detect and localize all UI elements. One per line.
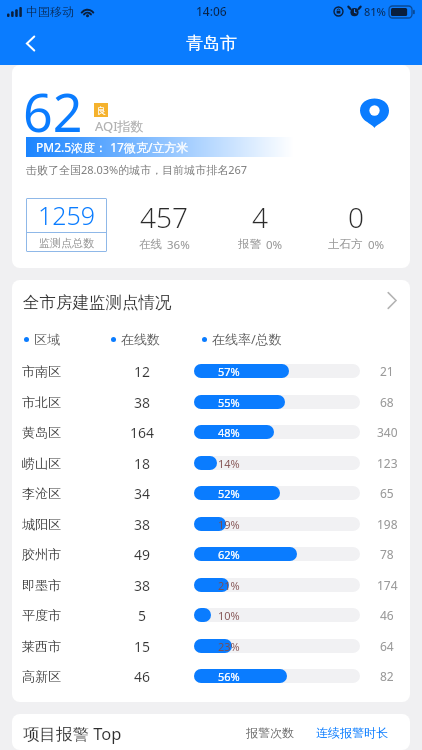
staticText: 21: [380, 363, 394, 379]
staticText: 164: [104, 423, 180, 442]
staticText: 4: [252, 198, 268, 231]
staticText: 82: [380, 668, 394, 684]
button[interactable]: 黄岛区: [12, 417, 410, 447]
button[interactable]: Back: [16, 29, 44, 57]
staticText: 项目报警 Top: [23, 722, 236, 745]
staticText: 市南区: [22, 363, 104, 379]
staticText: 0%: [368, 237, 385, 252]
button[interactable]: 连续报警时长: [304, 725, 410, 740]
staticText: 土石方: [328, 237, 363, 251]
staticText: 123: [377, 455, 398, 471]
staticText: 报警: [238, 237, 261, 251]
staticText: 李沧区: [22, 485, 104, 501]
staticText: 49: [104, 545, 180, 564]
staticText: 12: [104, 362, 180, 381]
staticText: 0: [348, 198, 364, 231]
staticText: 18: [104, 454, 180, 473]
staticText: 城阳区: [22, 516, 104, 532]
button[interactable]: 崂山区: [12, 448, 410, 478]
staticText: 击败了全国28.03%的城市，目前城市排名267: [26, 162, 248, 177]
staticText: 黄岛区: [22, 424, 104, 440]
staticText: 崂山区: [22, 455, 104, 471]
button[interactable]: 全市房建监测点情况: [12, 280, 410, 321]
staticText: 340: [377, 424, 398, 440]
staticText: 监测点总数: [39, 236, 94, 250]
staticText: 38: [104, 515, 180, 534]
staticText: 198: [377, 516, 398, 532]
button[interactable]: 城阳区: [12, 509, 410, 539]
staticText: PM2.5浓度： 17微克/立方米: [36, 139, 189, 155]
staticText: 10%: [218, 608, 240, 622]
staticText: 区域: [34, 331, 60, 347]
other: More: [387, 292, 397, 309]
button[interactable]: 市南区: [12, 356, 410, 386]
button[interactable]: 高新区: [12, 661, 410, 691]
staticText: 62: [23, 76, 83, 147]
staticText: 174: [377, 577, 398, 593]
staticText: 高新区: [22, 668, 104, 684]
staticText: 14:06: [196, 3, 227, 19]
staticText: 65: [380, 485, 394, 501]
staticText: 34: [104, 484, 180, 503]
staticText: 52%: [218, 486, 240, 500]
staticText: AQI指数: [95, 117, 144, 135]
staticText: 48%: [218, 425, 240, 439]
staticText: 即墨市: [22, 577, 104, 593]
staticText: 23%: [218, 639, 240, 653]
staticText: 46: [104, 667, 180, 686]
staticText: 64: [380, 638, 394, 654]
staticText: 在线: [139, 237, 162, 251]
button[interactable]: 平度市: [12, 600, 410, 630]
staticText: 连续报警时长: [316, 725, 388, 740]
button[interactable]: 市北区: [12, 387, 410, 417]
staticText: 中国移动: [26, 4, 74, 19]
staticText: 56%: [218, 669, 240, 683]
button[interactable]: 莱西市: [12, 631, 410, 661]
button[interactable]: Location: [360, 96, 389, 128]
staticText: 36%: [167, 237, 190, 252]
staticText: 55%: [218, 395, 240, 409]
button[interactable]: 胶州市: [12, 539, 410, 569]
staticText: 46: [380, 607, 394, 623]
staticText: 81%: [364, 4, 386, 19]
staticText: 0%: [266, 237, 283, 252]
staticText: 青岛市: [186, 33, 237, 54]
staticText: 68: [380, 394, 394, 410]
staticText: 21%: [218, 578, 240, 592]
staticText: 62%: [218, 547, 240, 561]
staticText: 平度市: [22, 607, 104, 623]
staticText: 在线率/总数: [212, 330, 282, 348]
staticText: 19%: [218, 517, 240, 531]
staticText: 市北区: [22, 394, 104, 410]
staticText: 在线数: [121, 331, 160, 347]
staticText: 1259: [38, 198, 96, 232]
staticText: 57%: [218, 364, 240, 378]
staticText: 报警次数: [246, 725, 294, 740]
button[interactable]: 李沧区: [12, 478, 410, 508]
staticText: 38: [104, 393, 180, 412]
staticText: 38: [104, 576, 180, 595]
staticText: 78: [380, 546, 394, 562]
button[interactable]: 报警次数: [236, 725, 304, 740]
staticText: 胶州市: [22, 546, 104, 562]
staticText: 457: [140, 198, 188, 231]
staticText: 良: [97, 105, 106, 116]
staticText: 15: [104, 637, 180, 656]
staticText: 5: [104, 606, 180, 625]
staticText: 莱西市: [22, 638, 104, 654]
staticText: 全市房建监测点情况: [23, 292, 387, 313]
staticText: 14%: [218, 456, 240, 470]
button[interactable]: 即墨市: [12, 570, 410, 600]
